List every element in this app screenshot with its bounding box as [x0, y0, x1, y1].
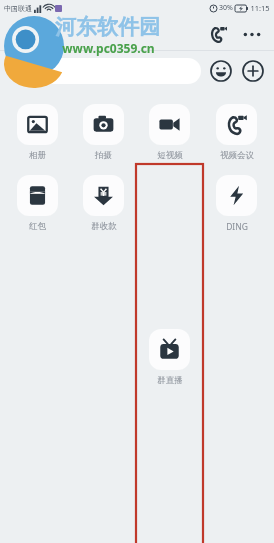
button[interactable]: DING	[216, 175, 257, 233]
staticText: 中国联通	[4, 4, 32, 13]
button[interactable]: Video call	[204, 20, 232, 48]
staticText: 相册	[29, 150, 46, 161]
staticText: 拍摄	[95, 150, 112, 161]
staticText: 群收款	[91, 221, 117, 232]
staticText: 短视频	[157, 150, 183, 161]
staticText: 河东软件园	[55, 14, 160, 40]
button[interactable]: 群收款	[83, 175, 124, 232]
button[interactable]: 群直播	[149, 329, 190, 386]
staticText: 视频会议	[220, 150, 254, 161]
staticText: 11:15	[250, 3, 270, 13]
button[interactable]: More functions	[238, 56, 268, 86]
button[interactable]: 相册	[17, 104, 58, 161]
staticText: www.pc0359.cn	[62, 40, 155, 56]
button[interactable]: Emoji	[206, 56, 236, 86]
button[interactable]: Voice message	[6, 55, 38, 87]
button[interactable]: More options	[238, 20, 266, 48]
button[interactable]	[41, 58, 201, 84]
button[interactable]: 短视频	[149, 104, 190, 161]
button[interactable]: 拍摄	[83, 104, 124, 161]
staticText: 群直播	[157, 375, 183, 386]
staticText: 红包	[29, 221, 46, 232]
staticText: 30%	[219, 3, 233, 13]
button[interactable]: 视频会议	[216, 104, 257, 161]
button[interactable]: 红包	[17, 175, 58, 232]
staticText: DING	[226, 221, 248, 233]
